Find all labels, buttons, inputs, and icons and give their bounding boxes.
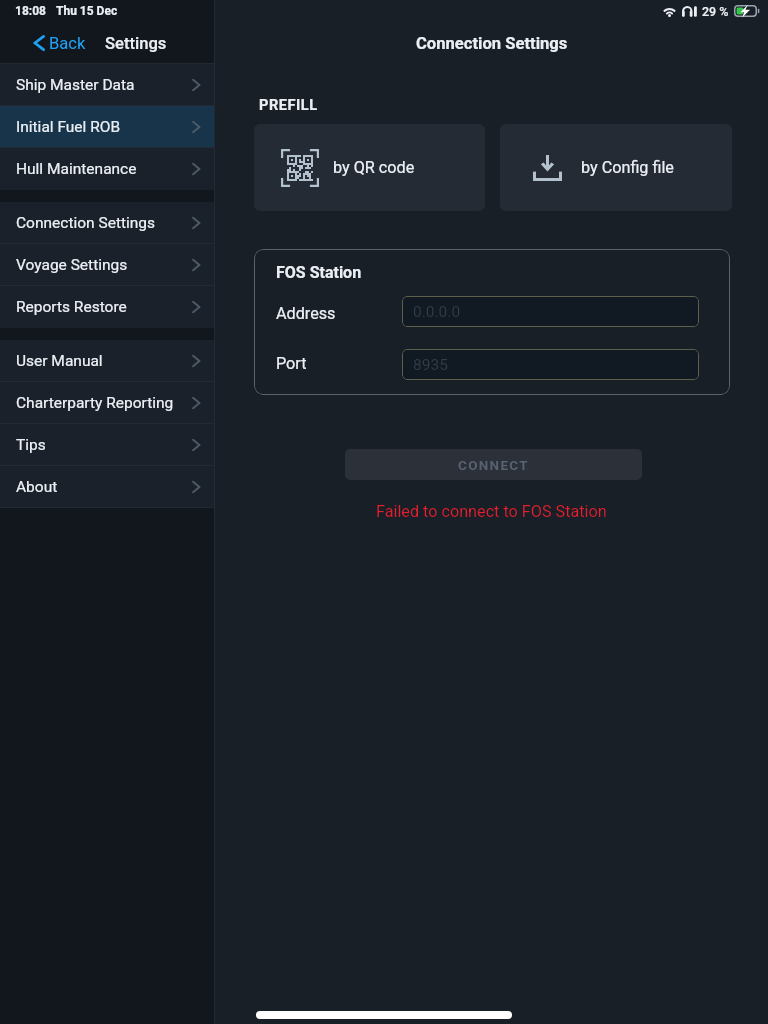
button[interactable]: About <box>0 466 215 508</box>
staticText: 8935 <box>413 356 448 374</box>
button[interactable]: Hull Maintenance <box>0 148 215 190</box>
button[interactable]: Reports Restore <box>0 286 215 328</box>
staticText: Initial Fuel ROB <box>16 118 121 136</box>
button[interactable]: Voyage Settings <box>0 244 215 286</box>
staticText: Ship Master Data <box>16 76 135 94</box>
button[interactable]: by QR code <box>254 124 485 211</box>
staticText: Charterparty Reporting <box>16 394 174 412</box>
staticText: Address <box>276 304 336 323</box>
staticText: About <box>16 478 58 496</box>
button[interactable]: CONNECT <box>345 449 642 480</box>
button[interactable]: by Config file <box>500 124 732 211</box>
staticText: Failed to connect to FOS Station <box>376 502 607 521</box>
other: Battery charging <box>734 5 759 17</box>
staticText: by QR code <box>333 158 415 177</box>
other: Headphones <box>682 6 697 17</box>
staticText: Hull Maintenance <box>16 160 137 178</box>
button[interactable]: Tips <box>0 424 215 466</box>
staticText: PREFILL <box>259 96 318 113</box>
button[interactable]: Connection Settings <box>0 202 215 244</box>
staticText: 29 % <box>702 4 729 19</box>
button[interactable]: 8935 <box>402 349 699 380</box>
staticText: Port <box>276 354 307 373</box>
staticText: Tips <box>16 436 46 454</box>
button[interactable]: 0.0.0.0 <box>402 296 699 327</box>
button[interactable]: Ship Master Data <box>0 64 215 106</box>
staticText: Reports Restore <box>16 298 127 316</box>
staticText: Back <box>49 34 86 53</box>
button[interactable]: Initial Fuel ROB <box>0 106 215 148</box>
staticText: FOS Station <box>276 263 362 282</box>
other: Wi-Fi <box>662 6 677 17</box>
staticText: 18:08 <box>15 4 46 18</box>
staticText: Connection Settings <box>16 214 156 232</box>
staticText: by Config file <box>581 158 674 177</box>
staticText: Settings <box>105 34 167 53</box>
staticText: Thu 15 Dec <box>56 4 118 18</box>
button[interactable]: Charterparty Reporting <box>0 382 215 424</box>
button[interactable]: Back <box>27 28 92 58</box>
staticText: User Manual <box>16 352 103 370</box>
staticText: Connection Settings <box>416 34 568 53</box>
staticText: CONNECT <box>458 457 529 473</box>
button[interactable]: User Manual <box>0 340 215 382</box>
staticText: 0.0.0.0 <box>413 303 461 321</box>
staticText: Voyage Settings <box>16 256 128 274</box>
